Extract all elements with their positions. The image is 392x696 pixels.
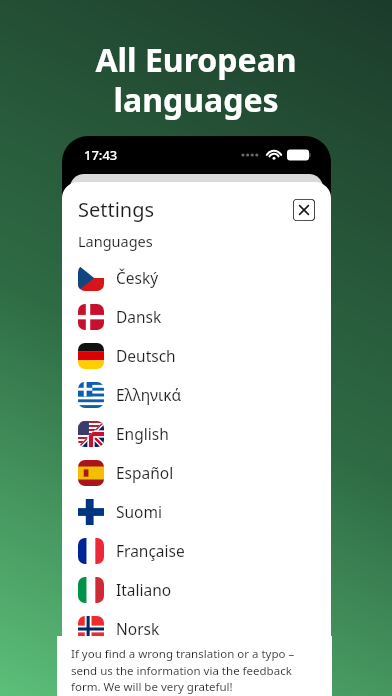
staticText: Suomi [116,501,162,522]
staticText: Italiano [116,579,172,600]
staticText: Française [116,540,185,561]
staticText: Český [116,267,159,288]
staticText: Languages [78,231,153,251]
button[interactable]: Ελληνικά [78,375,315,414]
staticText: Settings [78,196,155,223]
button[interactable]: Suomi [78,492,315,531]
button[interactable]: Française [78,531,315,570]
button[interactable]: Español [78,453,315,492]
staticText: If you find a wrong translation or a typ… [71,646,322,694]
staticText: Deutsch [116,345,176,366]
staticText: Ελληνικά [116,384,182,405]
staticText: Español [116,462,174,483]
staticText: All European languages [95,38,297,122]
button[interactable]: Český [78,258,315,297]
staticText: Norsk [116,618,160,639]
button[interactable]: English [78,414,315,453]
button[interactable]: Close [293,199,315,221]
staticText: 17:43 [84,146,118,164]
button[interactable]: Italiano [78,570,315,609]
staticText: Dansk [116,306,162,327]
button[interactable]: Deutsch [78,336,315,375]
button[interactable]: Dansk [78,297,315,336]
button[interactable]: Norsk [78,609,315,648]
staticText: English [116,423,169,444]
